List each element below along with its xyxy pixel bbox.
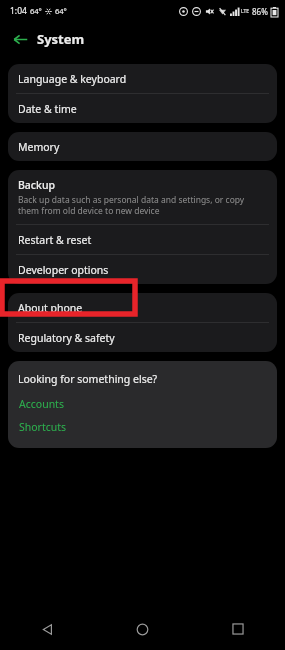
button[interactable]: Restart & reset (8, 225, 277, 254)
staticText: Back up data such as personal data and s… (18, 194, 265, 216)
staticText: System (37, 30, 85, 48)
staticText: Language & keyboard (18, 72, 127, 86)
button[interactable]: About phone (8, 293, 277, 322)
button[interactable]: Regulatory & safety (8, 323, 277, 352)
staticText: Accounts (19, 397, 64, 411)
button[interactable]: Date & time (8, 94, 277, 123)
button[interactable]: Accounts (18, 395, 65, 413)
staticText: About phone (18, 301, 83, 315)
button[interactable]: Home (95, 608, 190, 650)
button[interactable]: Developer options (8, 255, 277, 284)
staticText: Regulatory & safety (18, 331, 115, 345)
button[interactable]: Back (6, 25, 34, 53)
staticText: 1:04 (10, 5, 27, 17)
staticText: Restart & reset (18, 233, 92, 247)
button[interactable]: Shortcuts (18, 418, 68, 436)
staticText: Memory (18, 140, 60, 154)
staticText: Shortcuts (19, 420, 67, 434)
button[interactable]: Back (0, 608, 95, 650)
button[interactable]: Language & keyboard (8, 64, 277, 93)
staticText: Backup (18, 178, 55, 192)
button[interactable]: Recent apps (190, 608, 285, 650)
staticText: Looking for something else? (18, 372, 158, 386)
staticText: Date & time (18, 102, 77, 116)
button[interactable]: Backup (8, 170, 277, 224)
button[interactable]: Memory (8, 132, 277, 161)
staticText: 86% (252, 6, 268, 17)
staticText: LTE (241, 8, 250, 15)
staticText: 64° (55, 6, 67, 16)
staticText: Developer options (18, 263, 109, 277)
staticText: 64° (30, 6, 42, 16)
